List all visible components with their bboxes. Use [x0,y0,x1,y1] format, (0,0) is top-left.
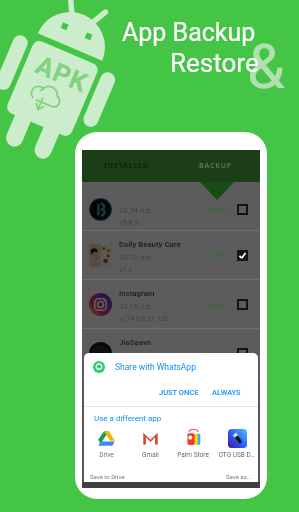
button[interactable]: JioSaavn [82,329,260,378]
staticText: Instagram [119,289,155,298]
staticText: Daily Beauty Care [119,240,181,249]
staticText: JUST ONCE [159,388,199,397]
button[interactable]: Share with WhatsApp [93,353,258,381]
button[interactable]: Select app [237,348,248,359]
staticText: OTG USB D... [218,451,256,459]
staticText: INSTALLED [104,161,149,171]
button[interactable]: ALWAYS [208,385,245,400]
staticText: BACKUP [199,161,232,171]
staticText: v6.1 [119,364,133,372]
staticText: ALWAYS [212,388,241,397]
staticText: Gmail [142,451,159,459]
staticText: Restore [170,48,259,78]
staticText: v174.0.0.31.132 [119,315,170,323]
button[interactable]: INSTALLED [82,150,171,182]
staticText: Installed [203,301,230,309]
staticText: 25.23 mb [119,351,151,360]
button[interactable]: 26.74 mb [82,182,260,231]
button[interactable]: Gmail [129,429,171,459]
button[interactable]: BACKUP [171,150,260,182]
staticText: Use a different app [94,414,162,423]
staticText: Share with WhatsApp [115,362,196,372]
staticText: Installed [203,350,230,358]
button[interactable]: Select app [237,299,248,310]
staticText: App Backup [122,18,256,47]
button[interactable]: Select app [237,204,248,215]
staticText: Palm Store [177,451,209,459]
button[interactable]: Daily Beauty Care [82,231,260,280]
staticText: JioSaavn [119,338,152,347]
button[interactable]: OTG USB D... [216,429,258,459]
staticText: v1.0 [119,266,133,274]
staticText: Installed [203,252,230,260]
staticText: v5.8.5 [119,219,138,227]
staticText: Save to Drive [90,473,125,480]
staticText: APK [31,50,93,98]
staticText: Drive [99,451,114,459]
staticText: 26.74 mb [119,206,151,215]
staticText: & [247,31,285,102]
button[interactable]: JUST ONCE [155,385,203,400]
staticText: 33.15 mb [119,302,151,311]
staticText: 10.12 mb [119,253,151,262]
button[interactable]: Drive [85,429,127,459]
button[interactable]: Select app [237,250,248,261]
staticText: Save as... [226,473,252,480]
staticText: Installed [203,206,230,214]
button[interactable]: Instagram [82,280,260,329]
button[interactable]: Palm Store [172,429,214,459]
